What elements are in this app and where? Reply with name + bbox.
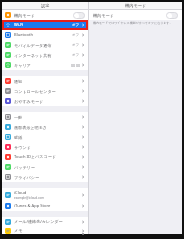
staticText: オフ	[72, 33, 80, 37]
staticText: 機内モード	[14, 13, 35, 18]
button[interactable]: プライバシー	[2, 172, 88, 182]
staticText: example@icloud.com	[14, 196, 45, 200]
button[interactable]: コントロールセンター	[2, 86, 88, 96]
button[interactable]: モバイルデータ通信	[2, 40, 88, 50]
button[interactable]: Bluetooth	[2, 30, 88, 40]
staticText: メール/連絡先/カレンダー	[14, 219, 63, 225]
button[interactable]: 機内モード	[89, 10, 182, 20]
staticText: 通知	[14, 79, 23, 84]
button[interactable]: Wi-Fi	[2, 20, 88, 30]
staticText: コントロールセンター	[14, 89, 56, 94]
staticText: 壁紙	[14, 135, 23, 140]
button[interactable]: 壁紙	[2, 132, 88, 142]
button[interactable]: おやすみモード	[2, 96, 88, 106]
button[interactable]: メール/連絡先/カレンダー	[2, 217, 88, 227]
staticText: 機内モード	[93, 13, 166, 18]
staticText: Wi-Fi	[14, 22, 24, 28]
button[interactable]: iTunes & App Store	[2, 201, 88, 211]
staticText: オフ	[72, 43, 80, 47]
button[interactable]: 機内モード	[2, 10, 88, 20]
staticText: キャリア	[14, 63, 31, 68]
button[interactable]: インターネット共有	[2, 50, 88, 60]
button[interactable]: Touch IDとパスコード	[2, 152, 88, 162]
staticText: iCloud	[14, 190, 27, 196]
button[interactable]: 機内モード	[73, 12, 85, 19]
staticText: サウンド	[14, 145, 31, 150]
staticText: おやすみモード	[14, 99, 44, 104]
button[interactable]: メモ	[2, 227, 88, 234]
button[interactable]: 画面表示と明るさ	[2, 122, 88, 132]
staticText: メモ	[14, 228, 23, 233]
staticText: モバイルデータ通信	[14, 43, 52, 48]
staticText: 画面表示と明るさ	[14, 125, 48, 130]
staticText: オフ	[72, 23, 80, 27]
staticText: Bluetooth	[14, 32, 33, 38]
staticText: 設定	[41, 3, 50, 8]
button[interactable]: サウンド	[2, 142, 88, 152]
button[interactable]: 一般	[2, 112, 88, 122]
staticText: 00 00	[71, 63, 80, 68]
staticText: 機内モード	[125, 3, 147, 8]
staticText: オフ	[72, 53, 80, 57]
staticText: Touch IDとパスコード	[14, 154, 56, 160]
staticText: バッテリー	[14, 165, 35, 170]
staticText: プライバシー	[14, 175, 40, 180]
button[interactable]: キャリア	[2, 60, 88, 70]
staticText: iTunes & App Store	[14, 203, 51, 209]
button[interactable]: バッテリー	[2, 162, 88, 172]
button[interactable]: 通知	[2, 76, 88, 86]
staticText: インターネット共有	[14, 53, 52, 58]
staticText: 機内モードではワイヤレス機能がすべてオフになります。	[93, 21, 173, 25]
button[interactable]: iCloud	[2, 188, 88, 201]
button[interactable]: 機内モード	[166, 12, 178, 19]
staticText: 一般	[14, 115, 23, 120]
